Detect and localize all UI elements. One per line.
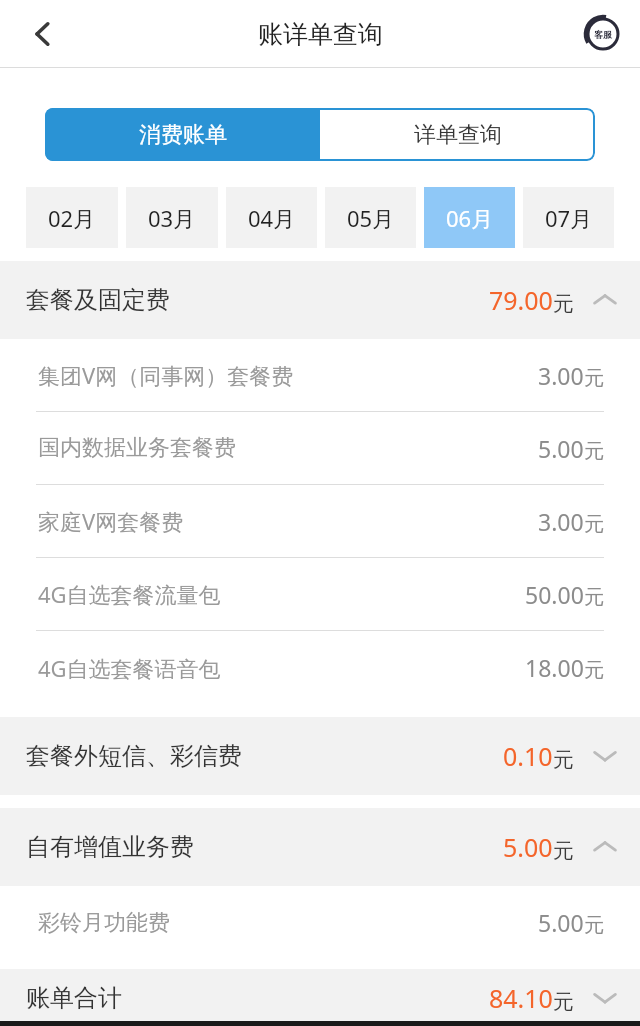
staticText: 元 [584, 585, 604, 610]
staticText: 元 [553, 989, 574, 1015]
staticText: 消费账单 [139, 121, 227, 149]
staticText: 套餐及固定费 [26, 285, 170, 315]
staticText: 套餐外短信、彩信费 [26, 741, 242, 771]
staticText: 家庭V网套餐费 [38, 506, 184, 536]
button[interactable]: 彩铃月功能费 [0, 886, 640, 959]
button[interactable]: 客服 Customer service [566, 0, 640, 68]
button[interactable]: 4G自选套餐语音包 [0, 631, 640, 704]
staticText: 自有增值业务费 [26, 832, 194, 862]
staticText: 84.10 [489, 981, 553, 1015]
button[interactable]: 账单合计 [0, 969, 640, 1026]
staticText: 元 [584, 439, 604, 464]
staticText: 集团V网（同事网）套餐费 [38, 360, 294, 390]
staticText: 账单合计 [26, 983, 122, 1013]
staticText: 79.00 [489, 283, 553, 317]
staticText: 0.10 [503, 739, 553, 773]
staticText: 07月 [545, 203, 593, 233]
staticText: 4G自选套餐语音包 [38, 653, 221, 683]
button[interactable]: 详单查询 [320, 108, 595, 161]
staticText: 5.00 [538, 433, 584, 464]
staticText: 客服 [594, 29, 612, 40]
staticText: 详单查询 [414, 121, 502, 149]
staticText: 元 [584, 658, 604, 683]
staticText: 06月 [446, 203, 494, 233]
button[interactable]: 国内数据业务套餐费 [0, 412, 640, 484]
button[interactable]: 套餐外短信、彩信费 [0, 717, 640, 795]
staticText: 元 [553, 291, 574, 317]
staticText: 元 [584, 512, 604, 537]
button[interactable]: 02月 [26, 187, 118, 248]
button[interactable]: 05月 [325, 187, 416, 248]
staticText: 国内数据业务套餐费 [38, 434, 236, 462]
staticText: 3.00 [538, 506, 584, 537]
staticText: 04月 [248, 203, 296, 233]
button[interactable]: 03月 [126, 187, 218, 248]
staticText: 4G自选套餐流量包 [38, 579, 221, 609]
button[interactable]: Back [0, 0, 86, 68]
button[interactable]: 07月 [523, 187, 614, 248]
button[interactable]: 家庭V网套餐费 [0, 485, 640, 557]
staticText: 彩铃月功能费 [38, 909, 170, 937]
staticText: 03月 [148, 203, 196, 233]
staticText: 02月 [48, 203, 96, 233]
button[interactable]: 消费账单 [45, 108, 320, 161]
button[interactable]: 集团V网（同事网）套餐费 [0, 339, 640, 411]
staticText: 元 [553, 747, 574, 773]
staticText: 账详单查询 [258, 19, 383, 50]
button[interactable]: 自有增值业务费 [0, 808, 640, 886]
staticText: 元 [584, 366, 604, 391]
button[interactable]: 06月 [424, 187, 515, 248]
staticText: 3.00 [538, 360, 584, 391]
staticText: 元 [553, 838, 574, 864]
button[interactable]: 4G自选套餐流量包 [0, 558, 640, 630]
staticText: 元 [584, 913, 604, 938]
staticText: 18.00 [525, 652, 584, 683]
staticText: 5.00 [503, 830, 553, 864]
staticText: 5.00 [538, 907, 584, 938]
button[interactable]: 套餐及固定费 [0, 261, 640, 339]
button[interactable]: 04月 [226, 187, 317, 248]
staticText: 05月 [347, 203, 395, 233]
staticText: 50.00 [525, 579, 584, 610]
